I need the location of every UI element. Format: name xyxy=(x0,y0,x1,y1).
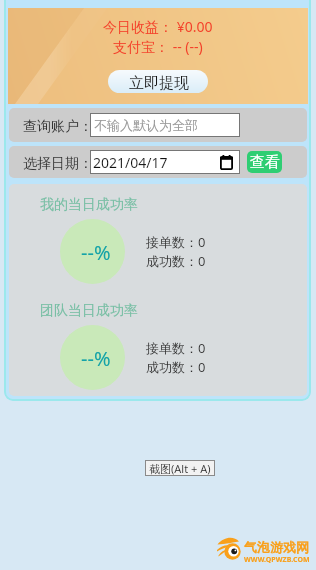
staticText: 支付宝： -- (--) xyxy=(113,37,203,56)
staticText: --% xyxy=(81,345,111,372)
staticText: 成功数：0 xyxy=(146,252,206,270)
button[interactable]: 2021/04/17 xyxy=(90,150,240,174)
staticText: 接单数：0 xyxy=(146,339,206,357)
button[interactable]: 立即提现 xyxy=(108,70,208,93)
button[interactable]: 查看 xyxy=(247,151,282,173)
staticText: WWW.QPWZB.COM xyxy=(244,555,310,565)
staticText: 查看 xyxy=(250,153,280,172)
staticText: 今日收益： ¥0.00 xyxy=(103,17,213,36)
staticText: 截图(Alt + A) xyxy=(149,461,211,476)
staticText: 气泡游戏网 xyxy=(244,539,309,555)
staticText: 立即提现 xyxy=(129,74,189,93)
staticText: --% xyxy=(81,239,111,266)
staticText: 我的当日成功率 xyxy=(40,196,138,214)
staticText: 查询账户： xyxy=(23,118,93,136)
staticText: 接单数：0 xyxy=(146,233,206,251)
staticText: 选择日期： xyxy=(23,155,93,173)
button[interactable]: 截图(Alt + A) xyxy=(145,460,215,476)
other: Pick date xyxy=(220,155,233,170)
button[interactable]: 不输入默认为全部 xyxy=(90,113,240,137)
staticText: 团队当日成功率 xyxy=(40,302,138,320)
staticText: 不输入默认为全部 xyxy=(94,117,198,133)
staticText: 2021/04/17 xyxy=(93,153,168,172)
staticText: 成功数：0 xyxy=(146,358,206,376)
